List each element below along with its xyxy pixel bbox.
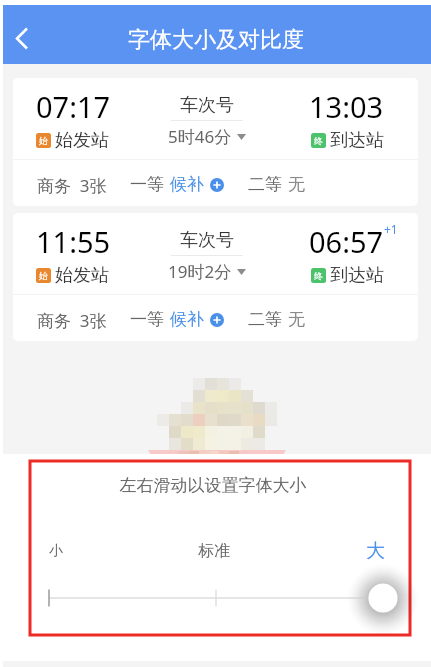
staticText: 19时2分 [168, 260, 232, 283]
staticText: 始发站 [55, 129, 109, 152]
staticText: 终 [314, 270, 323, 281]
staticText: 商务 3张 [37, 309, 107, 332]
staticText: 字体大小及对比度 [128, 26, 304, 54]
button[interactable]: Font size slider [30, 571, 410, 621]
staticText: 始 [39, 270, 48, 281]
staticText: 始 [39, 135, 48, 146]
staticText: 无 [288, 174, 305, 195]
button[interactable]: 候补 [170, 174, 224, 195]
button[interactable]: 标准 [198, 541, 230, 561]
staticText: 一等 [130, 309, 164, 330]
staticText: 一等 [130, 174, 164, 195]
button[interactable]: 11:55 [13, 213, 418, 341]
button[interactable]: 候补 [170, 309, 224, 330]
staticText: 车次号 [180, 94, 234, 117]
staticText: 07:17 [36, 87, 111, 126]
button[interactable]: Back [0, 10, 44, 54]
button[interactable]: 大 [366, 539, 385, 563]
staticText: 车次号 [180, 229, 234, 252]
staticText: 5时46分 [168, 125, 232, 148]
staticText: 终 [314, 135, 323, 146]
staticText: 二等 [248, 174, 282, 195]
staticText: +1 [384, 221, 398, 237]
staticText: 到达站 [330, 129, 384, 152]
staticText: 候补 [170, 174, 204, 195]
staticText: 二等 [248, 309, 282, 330]
staticText: 候补 [170, 309, 204, 330]
staticText: 始发站 [55, 264, 109, 287]
staticText: 商务 3张 [37, 174, 107, 197]
staticText: 左右滑动以设置字体大小 [23, 475, 403, 496]
staticText: 06:57 [309, 222, 384, 261]
button[interactable]: 07:17 [13, 78, 418, 206]
staticText: 到达站 [330, 264, 384, 287]
staticText: 13:03 [309, 87, 384, 126]
staticText: 11:55 [36, 222, 111, 261]
staticText: 无 [288, 309, 305, 330]
button[interactable]: 小 [49, 542, 63, 560]
